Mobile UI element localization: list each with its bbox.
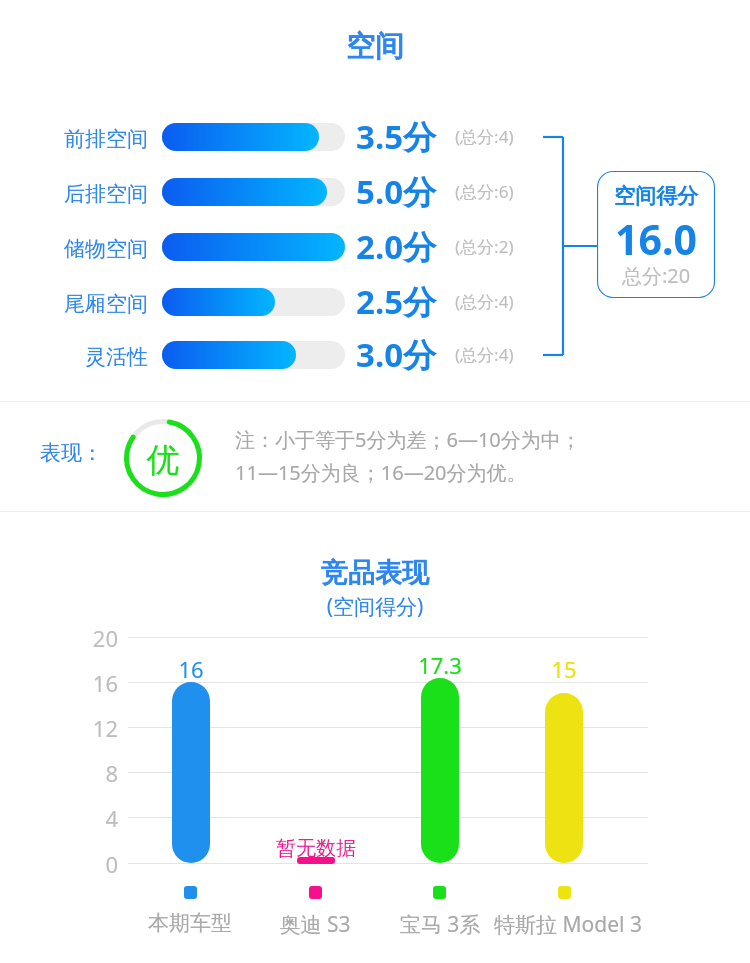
staticText: 2.5分 xyxy=(356,279,437,324)
staticText: 本期车型 xyxy=(130,910,250,936)
staticText: 优 xyxy=(124,439,202,481)
staticText: 16 xyxy=(153,654,229,684)
staticText: 表现： xyxy=(40,440,103,466)
staticText: 尾厢空间 xyxy=(28,291,148,317)
staticText: 8 xyxy=(72,758,118,788)
button[interactable] xyxy=(545,693,583,863)
button[interactable] xyxy=(162,288,345,316)
staticText: 空间得分 xyxy=(597,183,715,209)
staticText: 3.5分 xyxy=(356,114,437,159)
staticText: 特斯拉 Model 3 xyxy=(488,910,648,939)
staticText: 注：小于等于5分为差；6—10分为中； xyxy=(235,426,581,453)
button[interactable] xyxy=(421,678,459,863)
staticText: 宝马 3系 xyxy=(380,910,500,939)
staticText: 16.0 xyxy=(597,211,715,267)
button[interactable] xyxy=(162,178,345,206)
staticText: (总分:4) xyxy=(455,290,514,313)
staticText: 暂无数据 xyxy=(246,836,386,861)
staticText: 灵活性 xyxy=(28,344,148,370)
staticText: 总分:20 xyxy=(597,262,715,289)
staticText: 空间 xyxy=(0,28,750,65)
staticText: 15 xyxy=(526,654,602,684)
staticText: 奥迪 S3 xyxy=(255,910,375,939)
staticText: 4 xyxy=(72,803,118,833)
staticText: 17.3 xyxy=(402,650,478,680)
staticText: 后排空间 xyxy=(28,181,148,207)
button[interactable]: 表现优 xyxy=(124,419,202,497)
staticText: 20 xyxy=(72,623,118,653)
button[interactable] xyxy=(162,233,345,261)
staticText: (总分:6) xyxy=(455,180,514,203)
button[interactable] xyxy=(162,123,345,151)
staticText: 12 xyxy=(72,713,118,743)
staticText: 0 xyxy=(72,849,118,879)
button[interactable] xyxy=(172,682,210,863)
staticText: (空间得分) xyxy=(0,592,750,621)
staticText: (总分:4) xyxy=(455,343,514,366)
staticText: 前排空间 xyxy=(28,126,148,152)
staticText: 16 xyxy=(72,668,118,698)
staticText: (总分:2) xyxy=(455,235,514,258)
staticText: 5.0分 xyxy=(356,169,437,214)
staticText: 竞品表现 xyxy=(0,556,750,590)
button[interactable] xyxy=(162,341,345,369)
staticText: 11—15分为良；16—20分为优。 xyxy=(235,459,527,486)
staticText: 3.0分 xyxy=(356,332,437,377)
staticText: (总分:4) xyxy=(455,125,514,148)
button[interactable] xyxy=(597,171,715,298)
staticText: 储物空间 xyxy=(28,236,148,262)
staticText: 2.0分 xyxy=(356,224,437,269)
